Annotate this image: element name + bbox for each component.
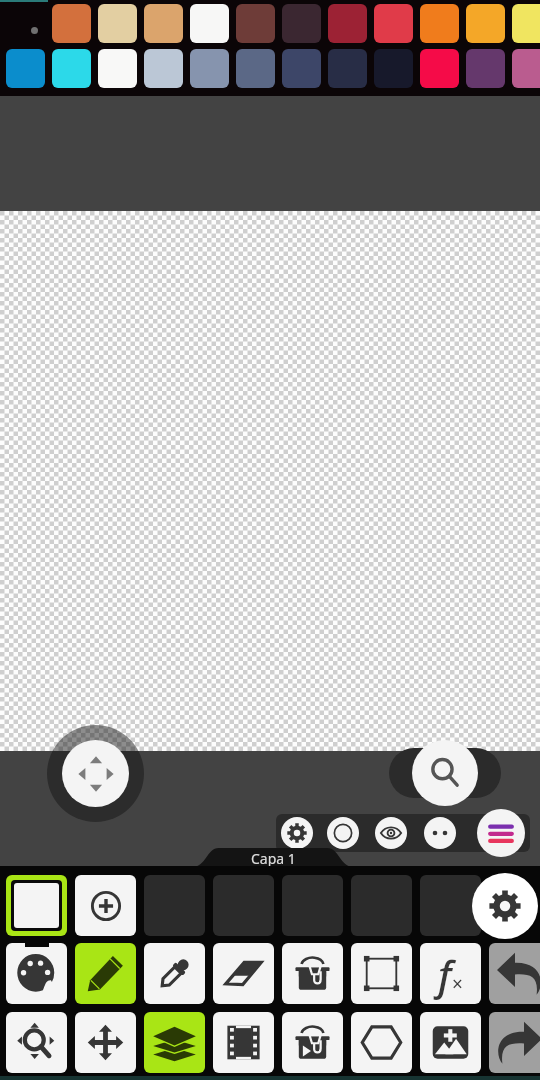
button[interactable] <box>328 49 367 88</box>
button[interactable]: undo <box>489 943 540 1004</box>
button[interactable] <box>236 4 275 43</box>
button[interactable] <box>144 49 183 88</box>
button[interactable]: movetool <box>75 1012 136 1073</box>
button[interactable]: Menu <box>477 809 525 857</box>
button[interactable] <box>282 875 343 936</box>
button[interactable]: palette <box>6 943 67 1004</box>
button[interactable]: Layer settings <box>472 873 538 939</box>
button[interactable]: Settings <box>281 817 313 849</box>
button[interactable]: Layer 1 <box>14 883 59 928</box>
button[interactable] <box>351 875 412 936</box>
button[interactable] <box>213 875 274 936</box>
button[interactable] <box>282 4 321 43</box>
button[interactable]: redo <box>489 1012 540 1073</box>
button[interactable] <box>282 49 321 88</box>
button[interactable] <box>98 49 137 88</box>
button[interactable] <box>236 49 275 88</box>
button[interactable]: Pan <box>62 740 129 807</box>
button[interactable] <box>52 49 91 88</box>
button[interactable]: layers <box>144 1012 205 1073</box>
button[interactable] <box>190 4 229 43</box>
button[interactable]: Visibility <box>375 817 407 849</box>
button[interactable] <box>98 4 137 43</box>
button[interactable] <box>190 49 229 88</box>
button[interactable] <box>374 4 413 43</box>
button[interactable]: fill <box>282 943 343 1004</box>
button[interactable]: More options <box>424 817 456 849</box>
staticText: Capa 1 <box>251 849 296 868</box>
button[interactable] <box>466 4 505 43</box>
button[interactable] <box>512 49 540 88</box>
button[interactable]: hex <box>351 1012 412 1073</box>
button[interactable]: film <box>213 1012 274 1073</box>
button[interactable]: addimg <box>420 1012 481 1073</box>
button[interactable] <box>374 49 413 88</box>
button[interactable]: Add layer <box>75 875 136 936</box>
button[interactable]: select <box>351 943 412 1004</box>
staticText: × <box>452 971 463 997</box>
button[interactable]: fillgif <box>282 1012 343 1073</box>
button[interactable] <box>52 4 91 43</box>
button[interactable] <box>6 49 45 88</box>
button[interactable]: Brush shape <box>327 817 359 849</box>
button[interactable] <box>328 4 367 43</box>
button[interactable] <box>420 4 459 43</box>
button[interactable] <box>144 4 183 43</box>
button[interactable] <box>420 49 459 88</box>
button[interactable]: zoomtool <box>6 1012 67 1073</box>
staticText: f <box>438 947 452 1001</box>
button[interactable] <box>144 875 205 936</box>
button[interactable]: eraser <box>213 943 274 1004</box>
button[interactable]: fx <box>420 943 481 1004</box>
button[interactable] <box>466 49 505 88</box>
button[interactable] <box>420 875 481 936</box>
button[interactable]: Zoom <box>412 740 478 806</box>
button[interactable]: pencil <box>75 943 136 1004</box>
button[interactable]: dropper <box>144 943 205 1004</box>
button[interactable] <box>512 4 540 43</box>
